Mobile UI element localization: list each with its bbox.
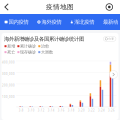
staticText: 100,000 [2,95,15,99]
staticText: 400,000 [2,61,15,64]
staticText: 3-12 [38,109,45,112]
staticText: 3-22 [88,109,95,112]
button[interactable]: Scroll right [109,70,118,79]
staticText: 海外新增确诊及各国累计确诊统计图 [4,36,84,42]
staticText: 湖北疫情 [74,19,94,25]
staticText: 3-18 [68,109,75,112]
staticText: 现存确诊 [20,50,36,55]
button[interactable]: 湖北疫情 [70,19,94,25]
button[interactable]: 最新动 [103,19,118,25]
button[interactable]: Locate [106,1,120,13]
staticText: 海外疫情 [41,19,61,25]
staticText: 3-14 [48,109,55,112]
staticText: 新增 [7,44,15,49]
button[interactable]: 海外疫情 [37,19,61,25]
button[interactable]: 国内疫情 [4,19,29,25]
staticText: 3-8 [19,109,24,112]
staticText: 200,000 [2,84,15,87]
staticText: 3-24 [98,109,105,112]
staticText: 最新动 [103,19,118,25]
staticText: 国内疫情 [9,19,29,25]
staticText: 累计确诊 [20,44,36,49]
staticText: 疫情地图 [46,3,74,11]
button[interactable]: 分享 [103,36,116,41]
staticText: 分享 [108,37,114,40]
staticText: 300,000 [2,72,15,76]
staticText: 3-20 [78,109,85,112]
staticText: 3-26 [108,109,115,112]
staticText: 大洲数 [41,50,53,55]
staticText: 死亡 [7,50,15,55]
staticText: 3-10 [28,109,35,112]
button[interactable]: Back [0,1,9,13]
staticText: 3-16 [58,109,65,112]
staticText: 治愈 [41,44,49,49]
